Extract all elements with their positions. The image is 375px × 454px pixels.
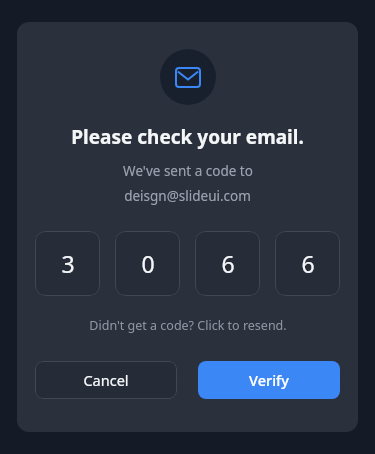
button[interactable]: 6 bbox=[195, 231, 260, 296]
staticText: Please check your email. bbox=[71, 124, 304, 150]
staticText: Verify bbox=[249, 370, 289, 390]
button[interactable]: 0 bbox=[115, 231, 180, 296]
staticText: 0 bbox=[141, 248, 155, 279]
staticText: Didn't get a code? Click to resend. bbox=[89, 317, 287, 334]
button[interactable]: Verify bbox=[198, 361, 340, 399]
staticText: 3 bbox=[61, 248, 75, 279]
button[interactable]: Didn't get a code? Click to resend. bbox=[89, 317, 287, 334]
staticText: We've sent a code to bbox=[123, 162, 253, 180]
button[interactable]: Cancel bbox=[35, 361, 177, 399]
button[interactable]: 6 bbox=[275, 231, 340, 296]
staticText: 6 bbox=[221, 248, 235, 279]
staticText: Cancel bbox=[83, 370, 129, 390]
button[interactable]: 3 bbox=[35, 231, 100, 296]
staticText: deisgn@slideui.com bbox=[124, 187, 251, 205]
staticText: 6 bbox=[301, 248, 315, 279]
